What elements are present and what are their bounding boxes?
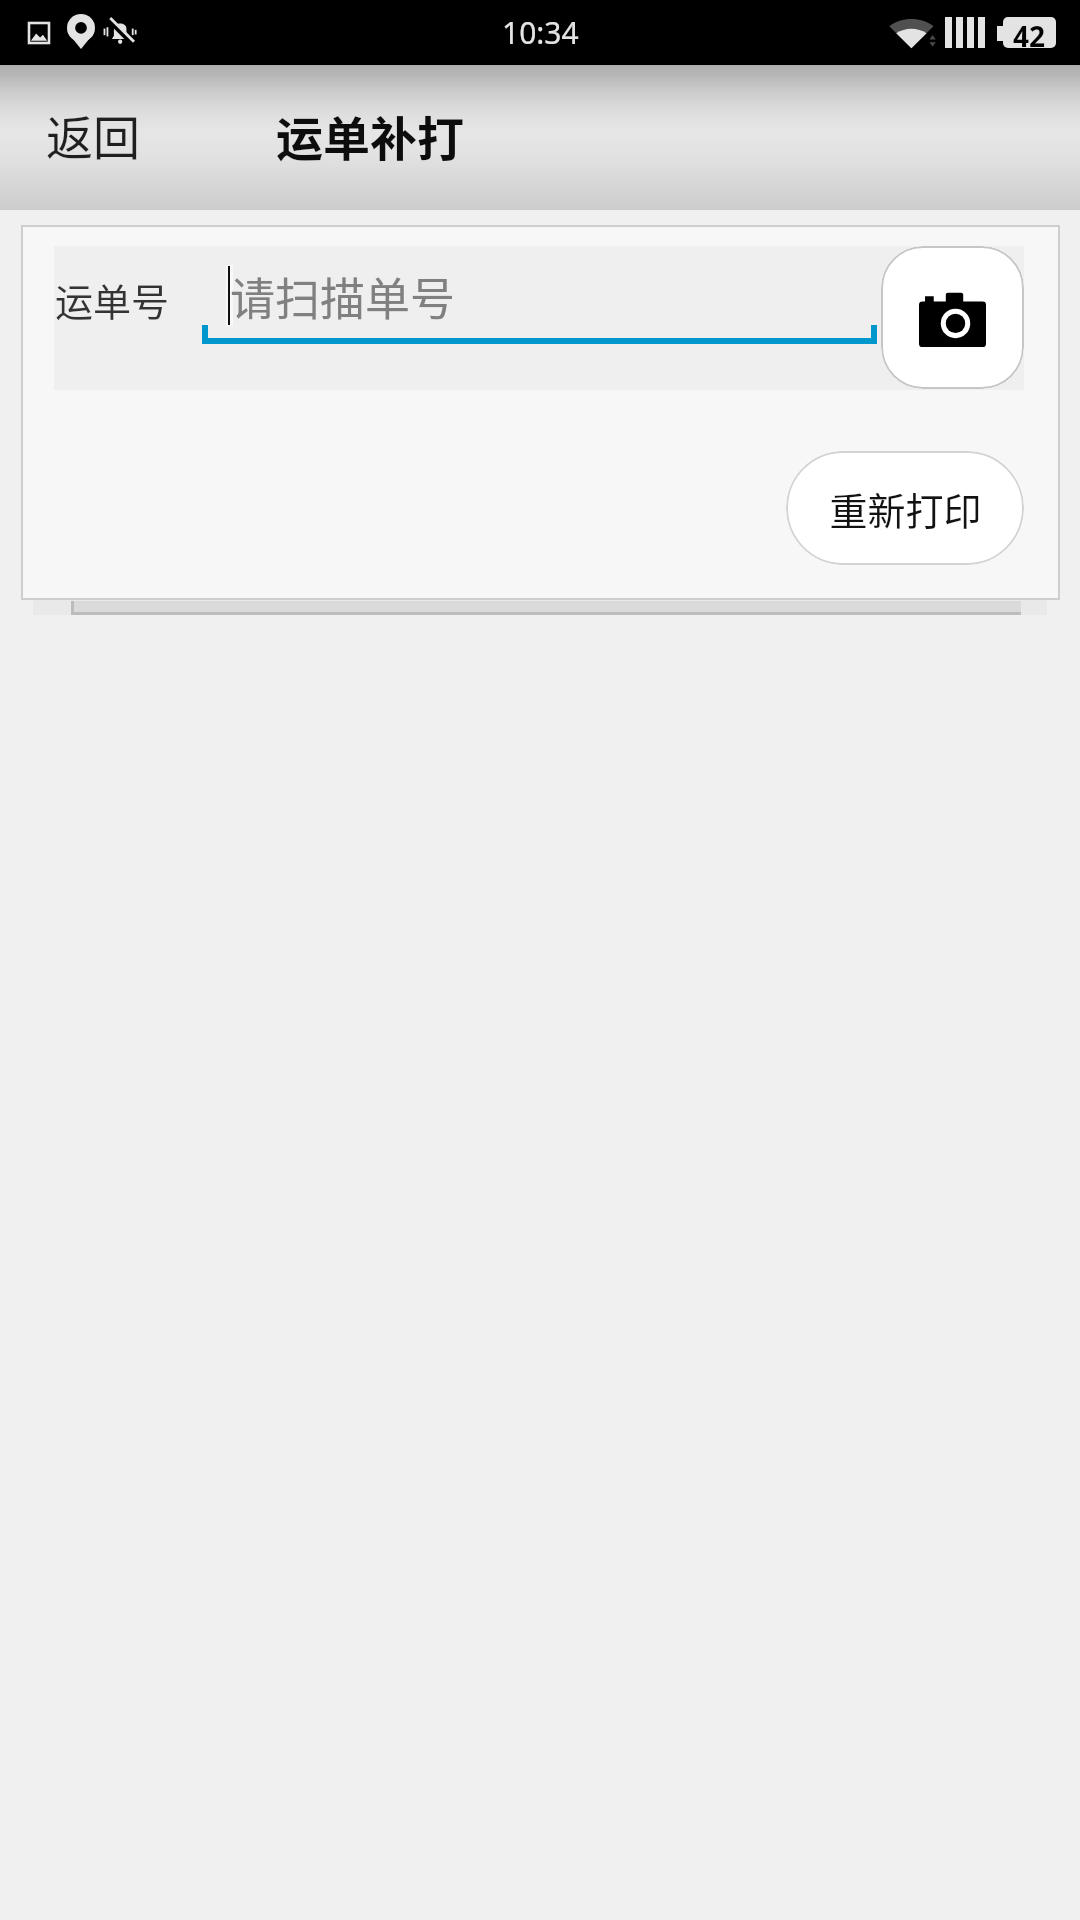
staticText: 请扫描单号 [230, 264, 456, 329]
staticText: 10:34 [502, 12, 579, 53]
button[interactable]: 重新打印 [786, 451, 1024, 565]
staticText: 返回 [46, 100, 140, 168]
staticText: 重新打印 [829, 481, 982, 536]
button[interactable]: Scan with camera [881, 246, 1024, 389]
button[interactable]: Waybill number input [202, 252, 877, 384]
button[interactable]: 返回 [22, 82, 164, 186]
staticText: 运单补打 [276, 101, 464, 169]
staticText: 42 [1013, 17, 1046, 48]
staticText: 运单号 [55, 272, 170, 327]
